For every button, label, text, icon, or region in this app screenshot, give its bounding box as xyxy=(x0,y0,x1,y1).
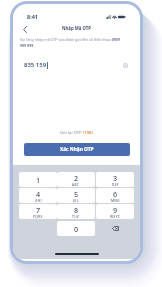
staticText: 3 xyxy=(113,173,118,183)
staticText: JKL xyxy=(73,199,79,203)
staticText: GHI xyxy=(35,199,42,203)
staticText: 9 xyxy=(113,205,118,215)
button[interactable]: 3 xyxy=(96,172,134,187)
staticText: PQRS xyxy=(33,215,43,219)
staticText: ABC xyxy=(72,183,80,187)
staticText: MNO xyxy=(111,199,120,203)
staticText: TUV xyxy=(72,215,80,219)
button[interactable]: 7 xyxy=(19,204,57,219)
button[interactable]: 5 xyxy=(57,188,95,203)
staticText: (108) xyxy=(83,130,93,136)
staticText: 6 xyxy=(113,189,118,199)
button[interactable]: 4 xyxy=(19,188,57,203)
button[interactable]: 0 xyxy=(57,221,95,236)
staticText: 4 xyxy=(36,189,41,199)
staticText: 2 xyxy=(74,173,79,183)
button[interactable]: Delete xyxy=(96,221,134,236)
staticText: DEF xyxy=(112,183,119,187)
button[interactable]: Gửi lại OTP xyxy=(13,130,140,136)
staticText: 5 xyxy=(74,189,79,199)
button[interactable]: 9 xyxy=(96,204,134,219)
button[interactable]: Clear text xyxy=(123,63,128,68)
staticText: Vui lòng nhập mã OTP vừa được gửi đến số… xyxy=(20,37,126,48)
button[interactable]: 6 xyxy=(96,188,134,203)
staticText: 0 xyxy=(74,224,79,234)
button[interactable]: 8 xyxy=(57,204,95,219)
staticText: WXYZ xyxy=(110,215,121,219)
staticText: 8:41 xyxy=(27,13,38,20)
staticText: 1 xyxy=(36,175,41,185)
staticText: 835 159 xyxy=(24,61,47,69)
staticText: 8 xyxy=(74,205,79,215)
staticText: 7 xyxy=(36,205,41,215)
button[interactable]: 1 xyxy=(19,172,57,187)
button[interactable]: Xác Nhận OTP xyxy=(24,143,130,156)
staticText: Nhập Mã OTP xyxy=(13,25,140,31)
staticText: Gửi lại OTP xyxy=(60,130,83,136)
staticText: Xác Nhận OTP xyxy=(60,146,94,153)
button[interactable]: 2 xyxy=(57,172,95,187)
button[interactable]: Back xyxy=(18,22,32,36)
